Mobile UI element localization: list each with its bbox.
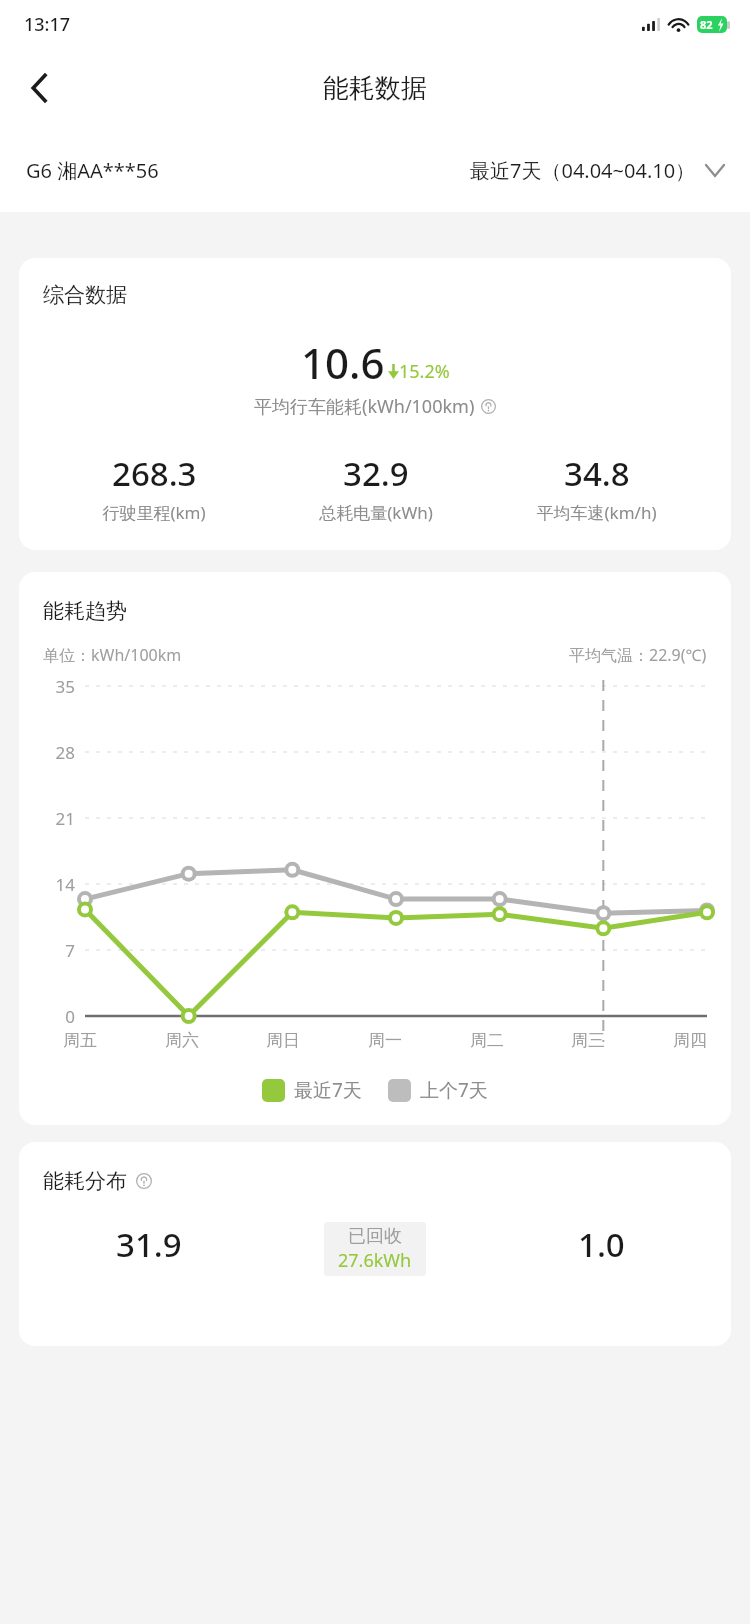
button[interactable]: 能耗分布 <box>19 1142 731 1346</box>
staticText: 268.3 <box>112 451 197 496</box>
staticText: 31.9 <box>116 1222 182 1267</box>
staticText: 14 <box>43 873 75 896</box>
staticText: 能耗分布 <box>43 1168 127 1194</box>
staticText: 1.0 <box>578 1222 625 1267</box>
staticText: 已回收 <box>348 1225 402 1248</box>
staticText: 周六 <box>165 1030 199 1051</box>
staticText: 82 <box>700 17 713 32</box>
staticText: 平均车速(km/h) <box>536 501 657 524</box>
staticText: 最近7天（04.04~04.10） <box>470 157 696 184</box>
staticText: 0 <box>43 1005 75 1028</box>
staticText: 周日 <box>266 1030 300 1051</box>
staticText: 27.6kWh <box>338 1248 412 1273</box>
staticText: 32.9 <box>343 451 409 496</box>
button[interactable]: Back <box>10 59 68 117</box>
staticText: 7 <box>43 939 75 962</box>
staticText: 10.6 <box>301 334 385 391</box>
staticText: 周五 <box>63 1030 97 1051</box>
staticText: 28 <box>43 741 75 764</box>
staticText: 上个7天 <box>420 1077 488 1103</box>
staticText: 平均气温：22.9(℃) <box>569 644 707 666</box>
staticText: 周二 <box>470 1030 504 1051</box>
staticText: G6 湘AA***56 <box>26 157 159 184</box>
staticText: 13:17 <box>24 12 71 37</box>
button[interactable]: 上个7天 <box>388 1077 488 1103</box>
staticText: 周四 <box>673 1030 707 1051</box>
staticText: 周三 <box>571 1030 605 1051</box>
staticText: 15.2% <box>399 359 450 384</box>
staticText: 综合数据 <box>43 282 127 308</box>
button[interactable]: 最近7天 <box>262 1077 362 1103</box>
button[interactable]: 综合数据 <box>19 258 731 550</box>
staticText: 单位：kWh/100km <box>43 644 182 666</box>
button[interactable]: 最近7天（04.04~04.10） <box>470 157 724 184</box>
staticText: 34.8 <box>564 451 630 496</box>
staticText: 21 <box>43 807 75 830</box>
staticText: 能耗数据 <box>323 72 427 105</box>
staticText: 能耗趋势 <box>43 598 127 624</box>
staticText: 总耗电量(kWh) <box>319 501 433 524</box>
staticText: 行驶里程(km) <box>102 501 206 524</box>
staticText: 35 <box>43 675 75 698</box>
staticText: 周一 <box>368 1030 402 1051</box>
staticText: 最近7天 <box>294 1077 362 1103</box>
button[interactable]: 能耗趋势 <box>19 572 731 1125</box>
staticText: 平均行车能耗(kWh/100km) <box>254 394 475 419</box>
